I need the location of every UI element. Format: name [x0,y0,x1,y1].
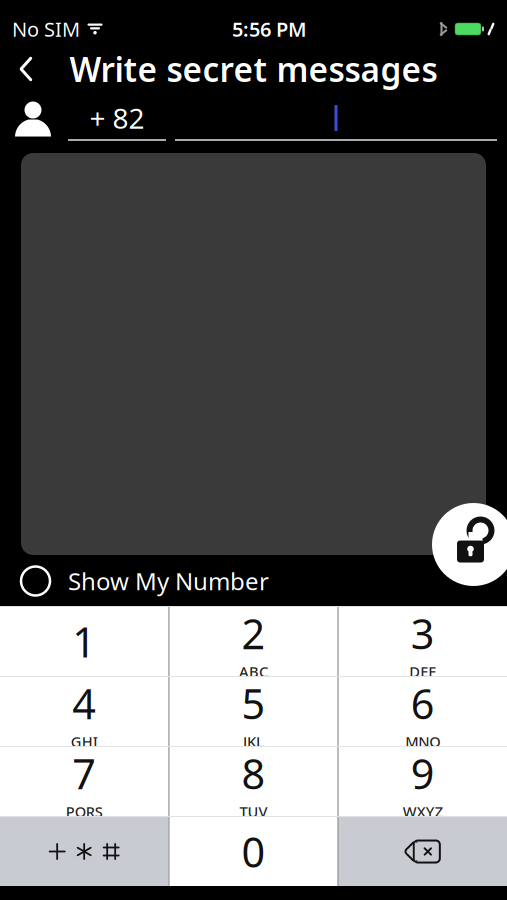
button[interactable]: 2 [169,607,338,676]
staticText: 0 [241,824,265,879]
staticText: 5:56 PM [232,16,307,42]
button[interactable]: 0 [169,817,338,886]
staticText: 8 [241,746,265,801]
button[interactable]: 3 [339,607,507,676]
button[interactable]: 4 [0,677,168,746]
button[interactable]: 7 [0,747,168,816]
staticText: + 82 [89,99,144,137]
staticText: WXYZ [403,802,443,821]
staticText: PQRS [66,802,103,821]
button[interactable]: Unlock encryption [432,503,507,586]
button[interactable]: Delete [339,817,507,886]
staticText: JKL [243,732,264,751]
staticText: No SIM [12,16,80,42]
staticText: 9 [411,746,435,801]
staticText: ABC [239,662,268,681]
staticText: 3 [411,606,435,661]
staticText: 1 [72,614,96,669]
button[interactable]: 5 [169,677,338,746]
staticText: 7 [72,746,96,801]
staticText: 6 [411,676,435,731]
staticText: DEF [409,662,436,681]
button[interactable]: 6 [339,677,507,746]
button[interactable]: Show My Number [21,557,269,605]
button[interactable]: 9 [339,747,507,816]
button[interactable]: Symbols [0,817,168,886]
button[interactable]: 1 [0,607,168,676]
button[interactable]: Choose contact [10,97,56,141]
staticText: 4 [72,676,96,731]
staticText: TUV [239,802,267,821]
staticText: 2 [241,606,265,661]
staticText: MNO [405,732,440,751]
staticText: 5 [241,676,265,731]
staticText: GHI [71,732,98,751]
button[interactable]: Back [0,43,52,95]
staticText: Show My Number [68,565,269,597]
staticText: Write secret messages [69,47,437,91]
button[interactable]: 8 [169,747,338,816]
